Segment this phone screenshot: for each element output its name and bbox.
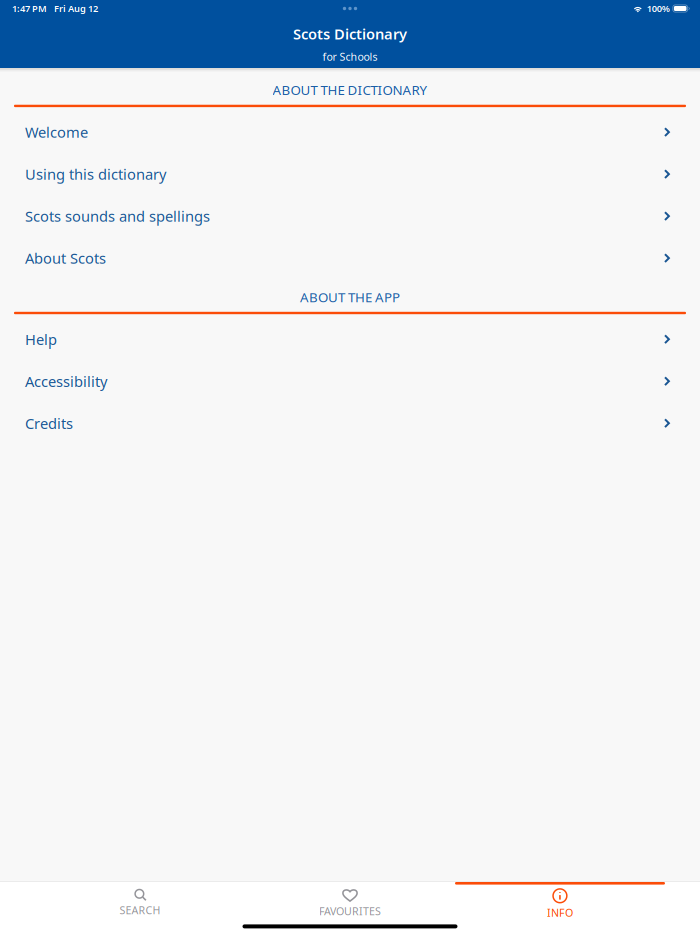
staticText: for Schools [322,49,377,64]
staticText: SEARCH [119,903,160,917]
staticText: 1:47 PM [12,2,47,15]
button[interactable]: Accessibility [0,360,700,402]
button[interactable]: INFO [455,882,665,922]
button[interactable]: Using this dictionary [0,153,700,195]
staticText: Using this dictionary [25,164,166,184]
staticText: FAVOURITES [319,904,381,918]
staticText: Help [25,329,57,349]
staticText: Welcome [25,122,88,142]
staticText: ABOUT THE DICTIONARY [272,81,427,99]
staticText: About Scots [25,248,106,268]
button[interactable]: Credits [0,402,700,444]
staticText: Credits [25,413,73,433]
staticText: ABOUT THE APP [300,288,400,306]
staticText: Scots Dictionary [293,24,407,43]
button[interactable]: Scots sounds and spellings [0,195,700,237]
button[interactable]: Help [0,318,700,360]
button[interactable]: FAVOURITES [245,882,455,922]
button[interactable]: SEARCH [35,882,245,922]
button[interactable]: About Scots [0,237,700,279]
staticText: Scots sounds and spellings [25,206,210,226]
staticText: Fri Aug 12 [54,2,98,15]
staticText: INFO [547,905,573,920]
button[interactable]: Welcome [0,111,700,153]
staticText: Accessibility [25,371,107,391]
staticText: 100% [647,2,670,15]
